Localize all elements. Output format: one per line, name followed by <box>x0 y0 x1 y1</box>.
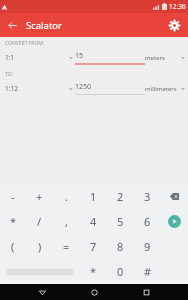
staticText: ) <box>38 239 42 254</box>
button[interactable]: Backspace <box>161 184 188 209</box>
staticText: 0 <box>117 264 124 279</box>
button[interactable]: 6 <box>134 209 161 234</box>
staticText: millimeters <box>145 85 177 93</box>
staticText: + <box>36 189 43 204</box>
staticText: CONVERT FROM: <box>5 40 45 47</box>
staticText: 5 <box>117 214 124 229</box>
staticText: ( <box>11 239 15 254</box>
button[interactable]: 15 <box>75 48 145 67</box>
staticText: 8 <box>117 239 124 254</box>
button[interactable]: * <box>80 259 107 284</box>
button[interactable]: * <box>0 209 26 234</box>
staticText: 1:12 <box>5 84 18 93</box>
button[interactable]: , <box>53 209 80 234</box>
button[interactable]: 0 <box>107 259 134 284</box>
staticText: # <box>144 264 152 279</box>
staticText: * <box>90 264 97 279</box>
button[interactable]: - <box>0 184 26 209</box>
button[interactable]: Back <box>4 17 21 34</box>
button[interactable]: ) <box>26 234 53 259</box>
staticText: 7 <box>90 239 97 254</box>
button[interactable]: 7 <box>80 234 107 259</box>
button[interactable]: Scale dropdown <box>66 79 75 98</box>
staticText: Scalator <box>26 19 62 32</box>
staticText: / <box>37 214 42 229</box>
button[interactable]: Enter <box>161 209 188 234</box>
button[interactable]: / <box>26 209 53 234</box>
button[interactable]: 1250 <box>75 79 145 98</box>
staticText: 1:1 <box>5 53 15 62</box>
button[interactable]: Unit dropdown <box>178 48 188 67</box>
staticText: * <box>10 214 17 229</box>
staticText: 9 <box>144 239 151 254</box>
staticText: 1 <box>90 189 97 204</box>
button[interactable]: . <box>53 184 80 209</box>
staticText: 1250 <box>75 82 92 92</box>
button[interactable]: Scale dropdown <box>66 48 75 67</box>
staticText: 3 <box>144 189 151 204</box>
button[interactable]: Unit dropdown <box>178 79 188 98</box>
button[interactable]: 9 <box>134 234 161 259</box>
button[interactable]: 1:1 <box>0 48 66 67</box>
button[interactable]: = <box>53 234 80 259</box>
button[interactable]: 3 <box>134 184 161 209</box>
button[interactable]: # <box>134 259 161 284</box>
button[interactable]: Settings <box>165 16 184 35</box>
staticText: 15 <box>75 51 84 61</box>
staticText: 2 <box>117 189 124 204</box>
staticText: 6 <box>144 214 151 229</box>
button[interactable]: 4 <box>80 209 107 234</box>
staticText: . <box>65 189 68 204</box>
staticText: meters <box>145 54 165 62</box>
button[interactable]: 5 <box>107 209 134 234</box>
button[interactable]: 1:12 <box>0 79 66 98</box>
button[interactable]: Home <box>68 284 120 300</box>
button[interactable]: + <box>26 184 53 209</box>
button[interactable]: Recents <box>120 284 172 300</box>
button[interactable]: Space <box>0 259 80 284</box>
staticText: 12:36 <box>169 2 186 11</box>
staticText: TO: <box>5 71 13 78</box>
button[interactable]: millimeters <box>145 79 178 98</box>
button[interactable]: 1 <box>80 184 107 209</box>
button[interactable]: meters <box>145 48 178 67</box>
staticText: 4 <box>90 214 97 229</box>
button[interactable]: ( <box>0 234 26 259</box>
staticText: = <box>63 239 70 254</box>
button[interactable]: Back <box>16 284 68 300</box>
button[interactable]: 2 <box>107 184 134 209</box>
staticText: , <box>65 214 68 229</box>
staticText: - <box>11 189 15 204</box>
button[interactable]: 8 <box>107 234 134 259</box>
